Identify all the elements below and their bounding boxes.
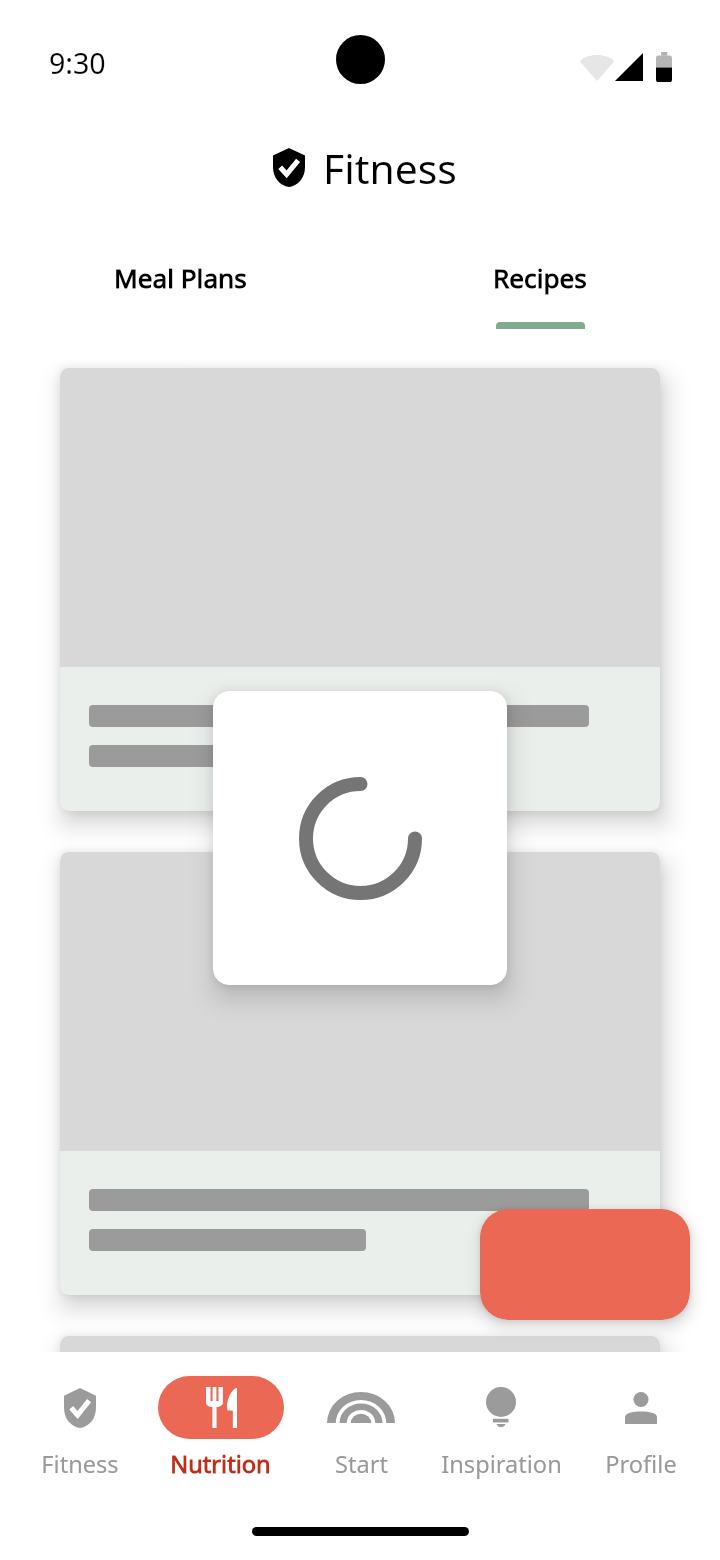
staticText: 9:30 [49, 43, 106, 82]
button[interactable]: Nutrition [150, 1352, 291, 1480]
staticText: Meal Plans [114, 260, 247, 296]
staticText: Fitness [323, 140, 457, 196]
staticText: Start [335, 1448, 388, 1480]
button[interactable]: Meal Plans [0, 215, 360, 359]
staticText: Profile [605, 1448, 677, 1480]
button[interactable]: Recipes [360, 215, 720, 359]
button[interactable]: Inspiration [431, 1352, 571, 1480]
button[interactable]: Recipe loading [60, 1336, 660, 1560]
button[interactable]: Fitness [9, 1352, 150, 1480]
button[interactable]: Recipe loading [60, 368, 660, 811]
staticText: Inspiration [441, 1448, 562, 1480]
button[interactable]: Start [291, 1352, 431, 1480]
button[interactable]: Recipe loading [60, 852, 660, 1295]
staticText: Recipes [493, 260, 587, 296]
button[interactable]: Add recipe [480, 1209, 690, 1320]
staticText: Nutrition [170, 1448, 271, 1480]
staticText: Fitness [41, 1448, 119, 1480]
button[interactable]: Profile [571, 1352, 711, 1480]
